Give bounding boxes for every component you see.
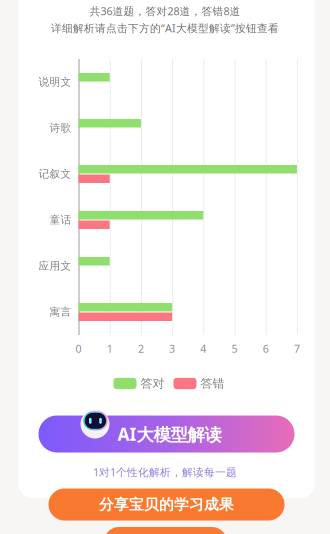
button[interactable]: AI大模型解读 <box>38 415 294 452</box>
staticText: 诗歌 <box>49 121 71 134</box>
staticText: 1 <box>107 341 113 356</box>
staticText: 共36道题，答对28道，答错8道 <box>89 4 240 18</box>
staticText: 3 <box>169 341 175 356</box>
staticText: 详细解析请点击下方的“AI大模型解读”按钮查看 <box>51 21 279 35</box>
staticText: 2 <box>138 341 144 356</box>
staticText: AI大模型解读 <box>117 422 221 445</box>
staticText: 6 <box>263 341 269 356</box>
staticText: 寓言 <box>49 305 71 318</box>
staticText: 5 <box>231 341 237 356</box>
staticText: 记叙文 <box>38 167 71 180</box>
staticText: 应用文 <box>38 259 71 272</box>
button[interactable]: 更多 <box>104 527 227 534</box>
staticText: 分享宝贝的学习成果 <box>99 495 234 513</box>
staticText: 1对1个性化解析，解读每一题 <box>93 465 237 479</box>
staticText: 答对 <box>140 376 164 391</box>
staticText: 7 <box>294 341 300 356</box>
button[interactable]: 分享宝贝的学习成果 <box>48 488 284 520</box>
staticText: 说明文 <box>38 75 71 88</box>
staticText: 4 <box>200 341 206 356</box>
staticText: 0 <box>75 341 81 356</box>
staticText: 童话 <box>49 213 71 226</box>
staticText: 答错 <box>200 376 224 391</box>
